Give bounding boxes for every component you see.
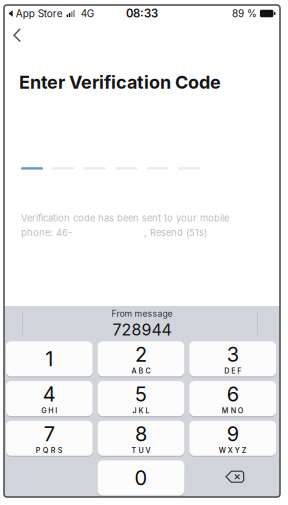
button[interactable]: 3 <box>189 341 276 378</box>
staticText: 6 <box>227 382 239 406</box>
staticText: 9 <box>227 422 239 446</box>
staticText: From message <box>111 308 172 319</box>
staticText: 3 <box>227 342 239 367</box>
button[interactable]: 9 <box>189 421 276 457</box>
staticText: D E F <box>224 367 241 375</box>
button[interactable]: Delete <box>189 461 276 496</box>
staticText: J K L <box>132 406 149 415</box>
staticText: 4 <box>43 382 56 406</box>
button[interactable]: 8 <box>98 421 184 457</box>
button[interactable]: 7 <box>6 421 93 457</box>
staticText: M N O <box>222 406 244 415</box>
staticText: 4G <box>81 7 94 20</box>
staticText: 89 % <box>232 7 257 20</box>
button[interactable]: 0 <box>98 460 184 497</box>
staticText: phone: 46- , Resend (51s) <box>21 227 207 238</box>
button[interactable]: 6 <box>189 381 276 417</box>
staticText: 728944 <box>112 320 171 339</box>
staticText: 1 <box>45 347 53 371</box>
staticText: 8 <box>135 422 147 446</box>
button[interactable]: 4 <box>6 381 93 417</box>
staticText: A B C <box>131 367 150 375</box>
staticText: 7 <box>44 422 55 446</box>
staticText: T U V <box>131 446 150 455</box>
button[interactable]: From message <box>72 306 212 341</box>
staticText: App Store <box>16 7 63 20</box>
staticText: Enter Verification Code <box>19 71 221 93</box>
staticText: G H I <box>41 406 57 415</box>
staticText: Verification code has been sent to your … <box>21 213 229 224</box>
button[interactable]: Back <box>4 22 33 48</box>
staticText: 08:33 <box>126 7 158 20</box>
staticText: 5 <box>135 382 147 406</box>
button[interactable]: 5 <box>98 381 184 417</box>
staticText: W X Y Z <box>219 446 247 455</box>
staticText: 2 <box>135 342 147 367</box>
button[interactable]: 2 <box>98 341 184 378</box>
staticText: 0 <box>134 466 147 490</box>
staticText: P Q R S <box>36 446 63 455</box>
button[interactable]: 1 <box>6 341 93 378</box>
